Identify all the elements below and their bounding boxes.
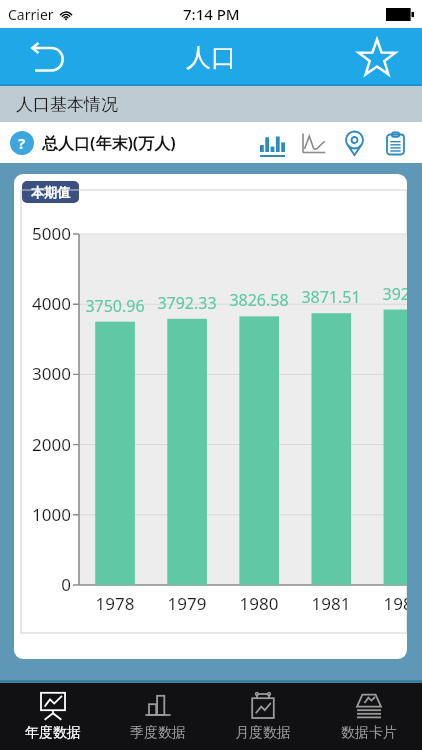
- staticText: Carrier: [8, 5, 54, 24]
- staticText: 0: [21, 573, 71, 596]
- staticText: 1979: [151, 592, 223, 615]
- staticText: 3792.33: [142, 292, 232, 314]
- button[interactable]: 季度数据: [105, 683, 210, 750]
- button[interactable]: Bar chart: [257, 128, 287, 158]
- staticText: 3000: [21, 362, 71, 385]
- staticText: 1980: [223, 592, 295, 615]
- staticText: 1000: [21, 503, 71, 526]
- staticText: 3750.96: [70, 295, 160, 317]
- staticText: 月度数据: [235, 724, 291, 742]
- staticText: 4000: [21, 292, 71, 315]
- staticText: 5000: [21, 222, 71, 245]
- staticText: 年度数据: [25, 724, 81, 742]
- button[interactable]: Table: [380, 128, 410, 158]
- staticText: 1982: [367, 592, 407, 615]
- button[interactable]: 年度数据: [0, 683, 105, 750]
- button[interactable]: Back: [24, 32, 74, 82]
- staticText: 3871.51: [286, 286, 376, 308]
- staticText: 3826.58: [214, 289, 304, 311]
- button[interactable]: 本期值: [22, 181, 79, 203]
- button[interactable]: 月度数据: [210, 683, 316, 750]
- staticText: 本期值: [31, 184, 70, 200]
- button[interactable]: Line chart: [298, 128, 328, 158]
- staticText: ?: [18, 133, 26, 153]
- button[interactable]: Help: [10, 131, 34, 155]
- button[interactable]: 数据卡片: [316, 683, 422, 750]
- staticText: 数据卡片: [341, 724, 397, 742]
- button[interactable]: Favorite: [352, 32, 402, 82]
- staticText: 1978: [79, 592, 151, 615]
- staticText: 7:14 PM: [183, 4, 240, 24]
- button[interactable]: Map: [339, 128, 369, 158]
- staticText: 季度数据: [130, 724, 186, 742]
- staticText: 人口: [186, 42, 236, 73]
- staticText: 2000: [21, 433, 71, 456]
- staticText: 3924.: [358, 283, 407, 305]
- staticText: 总人口(年末)(万人): [42, 132, 176, 154]
- staticText: 1981: [295, 592, 367, 615]
- staticText: 人口基本情况: [16, 94, 118, 115]
